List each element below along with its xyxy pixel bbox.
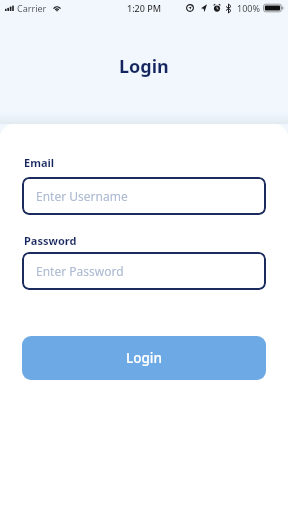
button[interactable]: Enter Username — [22, 177, 266, 215]
staticText: Carrier — [17, 2, 47, 14]
button[interactable]: Enter Password — [22, 252, 266, 290]
staticText: Password — [24, 233, 77, 248]
button[interactable]: Login — [22, 336, 266, 380]
staticText: Enter Username — [36, 188, 128, 204]
staticText: 100% — [237, 2, 260, 14]
staticText: Email — [24, 155, 55, 170]
staticText: Login — [119, 54, 169, 79]
staticText: 1:20 PM — [127, 2, 161, 14]
staticText: Login — [126, 349, 162, 367]
staticText: Enter Password — [36, 263, 124, 279]
